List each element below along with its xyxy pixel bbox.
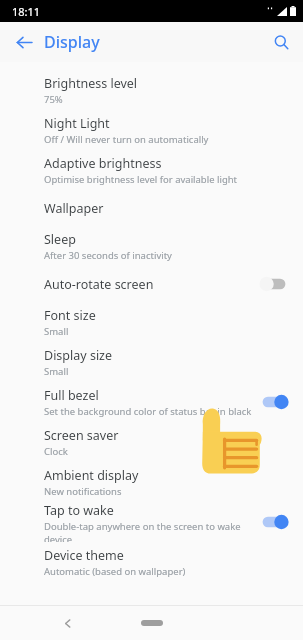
button[interactable]: Search [265,26,297,58]
button[interactable]: Screen saver [0,422,303,462]
staticText: Device theme [44,547,124,564]
staticText: Adaptive brightness [44,155,162,172]
staticText: Small [44,325,69,338]
staticText: 75% [44,93,63,106]
staticText: Screen saver [44,427,119,444]
button[interactable]: Ambient display [0,462,303,502]
button[interactable]: Full bezel [0,382,303,422]
staticText: 18:11 [12,4,41,19]
button[interactable]: Auto-rotate screen [0,266,303,302]
staticText: Full bezel [44,387,99,404]
button[interactable]: Sleep [0,226,303,266]
staticText: After 30 seconds of inactivity [44,249,172,262]
button[interactable]: Font size [0,302,303,342]
button[interactable]: Back [54,609,82,637]
staticText: Display size [44,347,113,364]
button[interactable]: Toggle on [259,512,289,532]
staticText: Double-tap anywhere on the screen to wak… [44,520,259,542]
staticText: Ambient display [44,467,139,484]
staticText: New notifications [44,485,122,498]
staticText: Brightness level [44,75,138,92]
staticText: Clock [44,445,68,458]
staticText: Wallpaper [44,200,104,217]
staticText: Small [44,365,69,378]
button[interactable]: Back [8,26,40,58]
button[interactable]: Adaptive brightness [0,150,303,190]
button[interactable]: Device theme [0,542,303,582]
button[interactable]: Home [132,614,172,632]
staticText: Tap to wake [44,502,114,519]
staticText: Display [44,31,100,53]
staticText: Night Light [44,115,110,132]
staticText: Font size [44,307,96,324]
staticText: Automatic (based on wallpaper) [44,565,186,578]
staticText: Set the background color of status bar i… [44,405,252,418]
staticText: Auto-rotate screen [44,276,154,293]
staticText: Sleep [44,231,76,248]
staticText: Off / Will never turn on automatically [44,133,209,146]
button[interactable]: Night Light [0,110,303,150]
button[interactable]: Display size [0,342,303,382]
button[interactable]: Toggle on [259,392,289,412]
button[interactable]: Wallpaper [0,190,303,226]
button[interactable]: Toggle off [259,274,289,294]
button[interactable]: Tap to wake [0,502,303,542]
button[interactable]: Brightness level [0,70,303,110]
staticText: Optimise brightness level for available … [44,173,238,186]
